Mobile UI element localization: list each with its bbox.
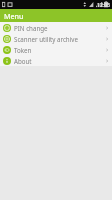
staticText: About [14, 57, 105, 65]
staticText: PIN change [14, 24, 105, 32]
button[interactable]: PIN change [0, 22, 112, 33]
staticText: Token [14, 46, 105, 54]
staticText: 12:05 [97, 1, 111, 8]
staticText: Scanner utility archive [14, 35, 105, 43]
button[interactable]: Scanner utility archive [0, 33, 112, 44]
button[interactable]: Token [0, 44, 112, 55]
button[interactable]: About [0, 55, 112, 66]
staticText: Menu [4, 11, 24, 21]
